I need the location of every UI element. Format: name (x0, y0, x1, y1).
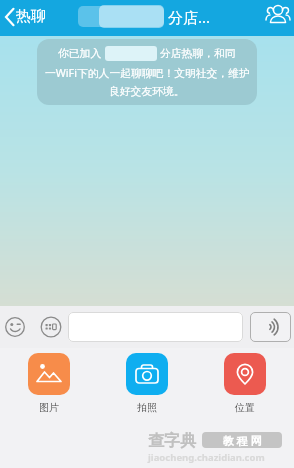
button[interactable] (250, 312, 291, 342)
button[interactable]: 热聊 (3, 7, 46, 26)
staticText: 图片 (39, 401, 59, 414)
button[interactable] (224, 353, 266, 395)
staticText: 分店... (168, 7, 211, 27)
staticText: 你已加入 (58, 47, 102, 61)
staticText: 拍照 (137, 401, 157, 414)
button[interactable] (68, 312, 243, 342)
staticText: 良好交友环境。 (109, 85, 185, 99)
staticText: 位置 (235, 401, 255, 414)
staticText: 一WiFi下的人一起聊聊吧！文明社交，维护 (45, 65, 250, 80)
staticText: jiaocheng.chazidian.com (148, 451, 265, 464)
staticText: 教 程 网 (223, 433, 262, 448)
staticText: 热聊 (16, 7, 46, 26)
button[interactable] (28, 353, 70, 395)
button[interactable] (266, 3, 290, 27)
staticText: 分店热聊，和同 (160, 47, 236, 61)
button[interactable] (126, 353, 168, 395)
button[interactable] (5, 317, 25, 337)
button[interactable] (40, 317, 62, 339)
staticText: 查字典 (148, 431, 196, 451)
